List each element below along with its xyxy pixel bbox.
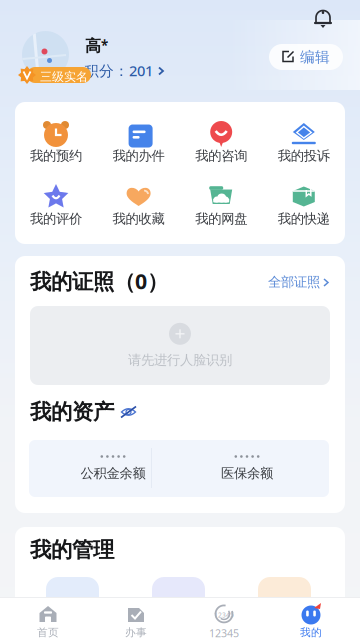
button[interactable]: 我的咨询 (180, 119, 262, 165)
button[interactable]: 积分：201 (84, 63, 204, 77)
button[interactable]: 我的预约 (15, 119, 97, 165)
button[interactable]: 编辑 (269, 44, 343, 70)
staticText: 我的办件 (113, 148, 165, 164)
button[interactable]: 公积金余额 (29, 440, 197, 497)
staticText: 我的咨询 (195, 148, 247, 164)
button[interactable] (46, 577, 99, 613)
staticText: 我的收藏 (113, 211, 165, 227)
staticText: 我的预约 (30, 148, 82, 164)
staticText: 请先进行人脸识别 (128, 352, 232, 368)
staticText: 12345 (209, 626, 239, 640)
button[interactable]: 请先进行人脸识别 (30, 306, 330, 385)
staticText: 办事 (125, 626, 147, 639)
button[interactable]: 办事 (101, 598, 171, 640)
button[interactable]: Hide balance (120, 405, 137, 419)
staticText: 积分：201 (84, 61, 153, 80)
button[interactable]: 我的网盘 (180, 182, 262, 228)
staticText: 12345 (214, 610, 234, 619)
button[interactable]: 12345 (189, 598, 259, 640)
staticText: 医保余额 (221, 465, 273, 481)
staticText: 高 (85, 36, 101, 56)
button[interactable]: 我的投诉 (263, 119, 345, 165)
button[interactable]: 我的 (276, 598, 346, 640)
button[interactable]: 我的快递 (263, 182, 345, 228)
button[interactable]: 医保余额 (163, 440, 331, 497)
button[interactable]: 我的评价 (15, 182, 97, 228)
button[interactable]: 我的办件 (98, 119, 180, 165)
staticText: 首页 (37, 626, 59, 639)
button[interactable]: 首页 (13, 598, 83, 640)
button[interactable]: 我的收藏 (98, 182, 180, 228)
button[interactable] (258, 577, 311, 613)
staticText: 我的证照（0） (30, 267, 168, 295)
button[interactable] (152, 577, 205, 613)
staticText: 我的资产 (30, 399, 114, 425)
staticText: 我的快递 (278, 211, 330, 227)
staticText: 我的管理 (30, 537, 114, 563)
staticText: 全部证照 (268, 274, 320, 290)
staticText: 三级实名 (40, 69, 88, 84)
button[interactable]: 全部证照 (255, 273, 330, 291)
staticText: 我的投诉 (278, 148, 330, 164)
staticText: 我的网盘 (195, 211, 247, 227)
staticText: * (101, 36, 108, 54)
staticText: 我的评价 (30, 211, 82, 227)
staticText: 我的 (300, 626, 322, 639)
staticText: 编辑 (300, 48, 330, 66)
button[interactable]: Notifications (312, 8, 334, 30)
staticText: 公积金余额 (80, 465, 145, 481)
